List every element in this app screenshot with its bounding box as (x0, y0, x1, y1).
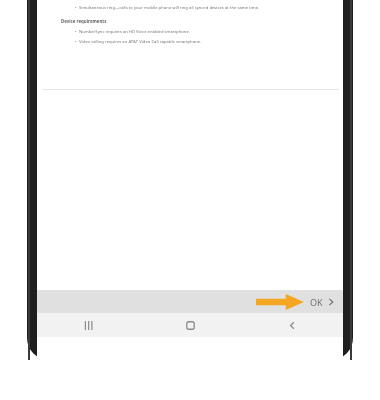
staticText: OK (310, 296, 323, 308)
button[interactable]: Home (139, 313, 241, 337)
button[interactable]: Recents (37, 313, 139, 337)
other: Next (256, 294, 304, 310)
staticText: NumberSync requires an HD Voice enabled … (79, 29, 190, 35)
staticText: Video calling requires an AT&T Video Cal… (79, 39, 202, 45)
button[interactable]: Back (241, 313, 343, 337)
staticText: • (75, 39, 77, 45)
staticText: Device requirements (61, 18, 107, 24)
staticText: • (75, 5, 77, 11)
button[interactable]: Next (256, 294, 339, 310)
staticText: Simultaneous ring—calls to your mobile p… (79, 5, 260, 11)
staticText: • (75, 29, 77, 35)
